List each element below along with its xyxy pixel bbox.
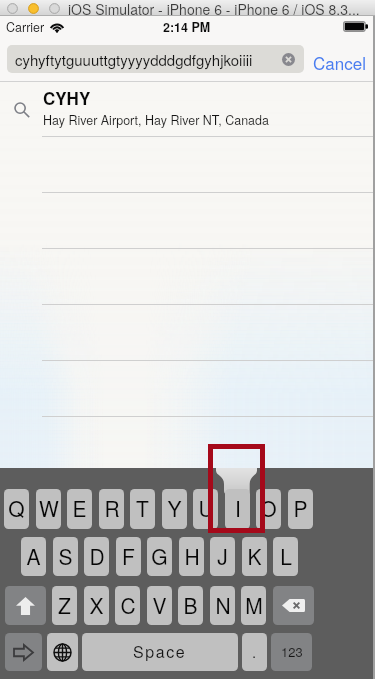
button[interactable]: O <box>256 489 281 529</box>
staticText: 2:14 PM <box>163 18 211 36</box>
staticText: R <box>104 493 120 523</box>
staticText: A <box>26 541 41 571</box>
staticText: F <box>122 541 135 571</box>
button[interactable]: 123 <box>271 633 312 671</box>
button[interactable]: V <box>147 586 172 625</box>
button[interactable]: J <box>210 537 235 576</box>
button[interactable]: E <box>67 489 92 529</box>
staticText: I <box>235 493 241 523</box>
staticText: W <box>39 493 59 523</box>
staticText: G <box>151 541 168 571</box>
staticText: N <box>215 590 231 620</box>
staticText: D <box>89 541 105 571</box>
button[interactable]: L <box>273 537 298 576</box>
button[interactable]: X <box>84 586 109 625</box>
staticText: Cancel <box>313 50 366 74</box>
button[interactable]: D <box>84 537 109 576</box>
staticText: H <box>184 541 200 571</box>
button[interactable]: W <box>36 489 61 529</box>
button[interactable]: K <box>242 537 267 576</box>
staticText: U <box>198 493 214 523</box>
staticText: Hay River Airport, Hay River NT, Canada <box>43 111 269 129</box>
staticText: L <box>280 541 292 571</box>
staticText: . <box>252 641 257 662</box>
staticText: T <box>136 493 149 523</box>
button[interactable]: C <box>115 586 140 625</box>
staticText: P <box>293 493 308 523</box>
staticText: Q <box>8 493 25 523</box>
button[interactable]: F <box>116 537 141 576</box>
button[interactable]: I <box>225 489 250 529</box>
staticText: 123 <box>281 642 303 661</box>
button[interactable]: . <box>242 633 267 671</box>
staticText: S <box>58 541 73 571</box>
button[interactable]: T <box>130 489 155 529</box>
button[interactable]: cyhyftytguuuttgtyyyydddgdfgyhjkoiiii <box>7 45 304 73</box>
staticText: C <box>120 590 136 620</box>
button[interactable]: Shift <box>5 586 46 625</box>
staticText: K <box>247 541 262 571</box>
button[interactable]: Cancel <box>313 51 366 75</box>
button[interactable]: N <box>210 586 235 625</box>
button[interactable]: S <box>53 537 78 576</box>
staticText: Z <box>58 590 71 620</box>
staticText: CYHY <box>43 86 91 110</box>
staticText: cyhyftytguuuttgtyyyydddgdfgyhjkoiiii <box>15 49 253 70</box>
button[interactable]: Space <box>82 633 238 671</box>
button[interactable]: Clear text <box>282 53 295 66</box>
button[interactable]: CYHY <box>0 82 373 136</box>
staticText: Y <box>167 493 182 523</box>
button[interactable]: R <box>99 489 124 529</box>
button[interactable]: Dismiss keyboard <box>5 633 42 671</box>
staticText: E <box>72 493 87 523</box>
staticText: Space <box>133 640 187 663</box>
staticText: Carrier <box>6 18 45 36</box>
button[interactable]: U <box>193 489 218 529</box>
staticText: V <box>152 590 167 620</box>
staticText: M <box>245 590 263 620</box>
button[interactable]: Backspace <box>273 586 314 625</box>
staticText: O <box>260 493 277 523</box>
button[interactable]: M <box>241 586 266 625</box>
button[interactable]: A <box>21 537 46 576</box>
staticText: J <box>217 541 228 571</box>
button[interactable]: Y <box>162 489 187 529</box>
staticText: X <box>89 590 104 620</box>
staticText: iOS Simulator - iPhone 6 - iPhone 6 / iO… <box>68 0 360 15</box>
staticText: B <box>183 590 198 620</box>
button[interactable]: Z <box>52 586 77 625</box>
button[interactable]: G <box>147 537 172 576</box>
button[interactable]: P <box>288 489 313 529</box>
button[interactable]: B <box>178 586 203 625</box>
button[interactable]: Next keyboard <box>47 633 78 671</box>
button[interactable]: H <box>179 537 204 576</box>
button[interactable]: Q <box>4 489 29 529</box>
